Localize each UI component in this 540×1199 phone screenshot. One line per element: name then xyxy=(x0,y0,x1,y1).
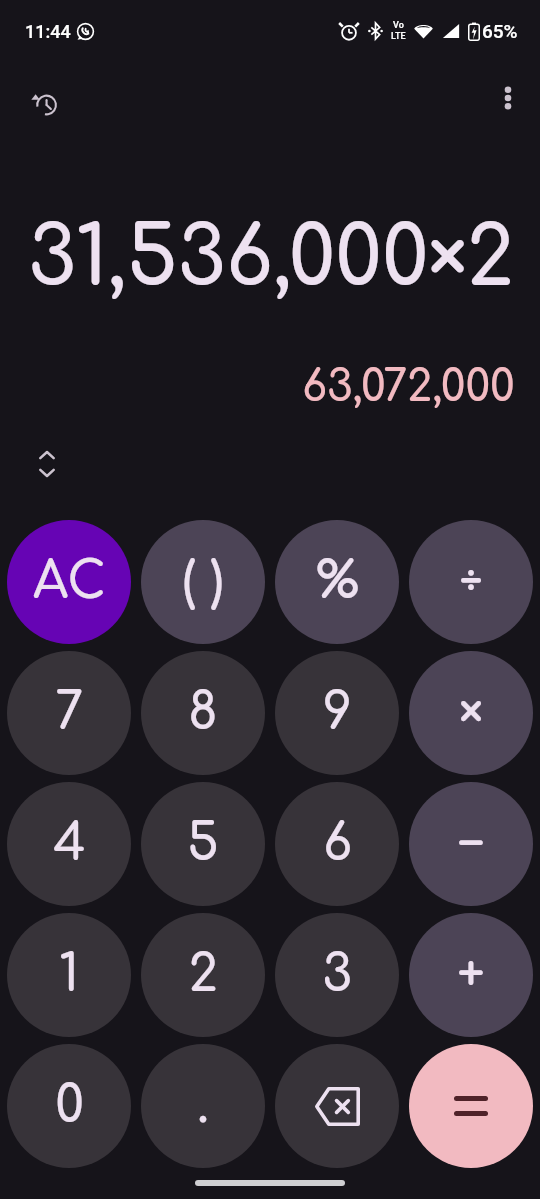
staticText: 31,536,000×2 xyxy=(28,214,514,304)
staticText: 6 xyxy=(323,816,352,872)
button[interactable]: 7 xyxy=(7,651,131,775)
staticText: + xyxy=(457,947,485,1003)
button[interactable]: Backspace xyxy=(275,1044,399,1168)
staticText: LTE xyxy=(391,31,406,42)
button[interactable]: Minus xyxy=(409,782,533,906)
button[interactable]: History xyxy=(21,80,69,128)
button[interactable]: 5 xyxy=(141,782,265,906)
staticText: 11:44 xyxy=(25,21,71,42)
button[interactable]: Plus xyxy=(409,913,533,1037)
button[interactable]: Percent xyxy=(275,520,399,644)
staticText: . xyxy=(197,1078,209,1134)
button[interactable]: 4 xyxy=(7,782,131,906)
staticText: 4 xyxy=(53,816,86,872)
staticText: % xyxy=(316,554,359,610)
button[interactable]: Multiply xyxy=(409,651,533,775)
button[interactable]: Decimal point xyxy=(141,1044,265,1168)
button[interactable]: Divide xyxy=(409,520,533,644)
staticText: 9 xyxy=(323,685,352,741)
staticText: ÷ xyxy=(459,554,483,610)
staticText: − xyxy=(457,816,485,872)
staticText: AC xyxy=(33,554,106,610)
staticText: ( ) xyxy=(182,554,224,610)
staticText: 1 xyxy=(59,947,79,1003)
button[interactable]: 9 xyxy=(275,651,399,775)
staticText: 2 xyxy=(188,947,218,1003)
staticText: 5 xyxy=(187,816,219,872)
button[interactable]: Parentheses xyxy=(141,520,265,644)
staticText: × xyxy=(459,685,483,741)
staticText: 8 xyxy=(188,685,218,741)
staticText: Vo xyxy=(393,20,404,31)
button[interactable]: 2 xyxy=(141,913,265,1037)
staticText: 0 xyxy=(55,1078,84,1134)
button[interactable]: 1 xyxy=(7,913,131,1037)
button[interactable]: More options xyxy=(484,74,532,122)
staticText: 65% xyxy=(482,20,518,42)
staticText: 3 xyxy=(322,947,352,1003)
button[interactable]: Equals xyxy=(409,1044,533,1168)
button[interactable]: Expand result xyxy=(25,442,69,486)
staticText: 63,072,000 xyxy=(302,363,515,411)
button[interactable]: 6 xyxy=(275,782,399,906)
button[interactable]: All clear xyxy=(7,520,131,644)
button[interactable]: 8 xyxy=(141,651,265,775)
button[interactable]: 3 xyxy=(275,913,399,1037)
staticText: 7 xyxy=(55,685,83,741)
button[interactable]: 0 xyxy=(7,1044,131,1168)
